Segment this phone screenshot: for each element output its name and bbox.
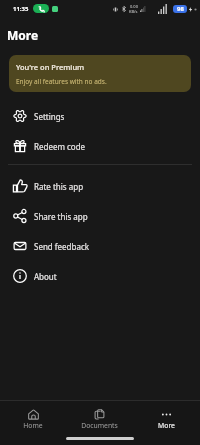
staticText: Redeem code bbox=[34, 141, 86, 152]
button[interactable]: Share this app bbox=[0, 201, 200, 231]
staticText: Home bbox=[23, 421, 43, 430]
staticText: You're on Premium bbox=[16, 62, 85, 72]
staticText: Documents bbox=[81, 421, 118, 430]
staticText: 11:35 bbox=[13, 5, 29, 13]
staticText: Settings bbox=[34, 111, 65, 122]
staticText: Share this app bbox=[34, 211, 88, 222]
staticText: Rate this app bbox=[34, 181, 84, 192]
button[interactable]: You're on Premium bbox=[9, 55, 191, 92]
staticText: Send feedback bbox=[34, 241, 90, 252]
button[interactable]: More bbox=[133, 401, 200, 436]
button[interactable]: About bbox=[0, 261, 200, 291]
staticText: KB/s bbox=[129, 9, 138, 14]
other: Home bbox=[28, 409, 39, 420]
staticText: 0.00 bbox=[130, 4, 138, 9]
button[interactable]: Documents bbox=[66, 401, 133, 436]
button[interactable]: Settings bbox=[0, 101, 200, 131]
button[interactable]: Redeem code bbox=[0, 131, 200, 161]
button[interactable]: Home bbox=[0, 401, 66, 436]
staticText: About bbox=[34, 271, 57, 282]
other: More bbox=[161, 409, 172, 420]
staticText: Enjoy all features with no ads. bbox=[16, 77, 107, 86]
staticText: 98 bbox=[177, 5, 184, 13]
button[interactable]: Rate this app bbox=[0, 171, 200, 201]
staticText: More bbox=[158, 421, 175, 430]
staticText: More bbox=[7, 27, 39, 43]
button[interactable]: Send feedback bbox=[0, 231, 200, 261]
other: Documents bbox=[94, 409, 105, 420]
